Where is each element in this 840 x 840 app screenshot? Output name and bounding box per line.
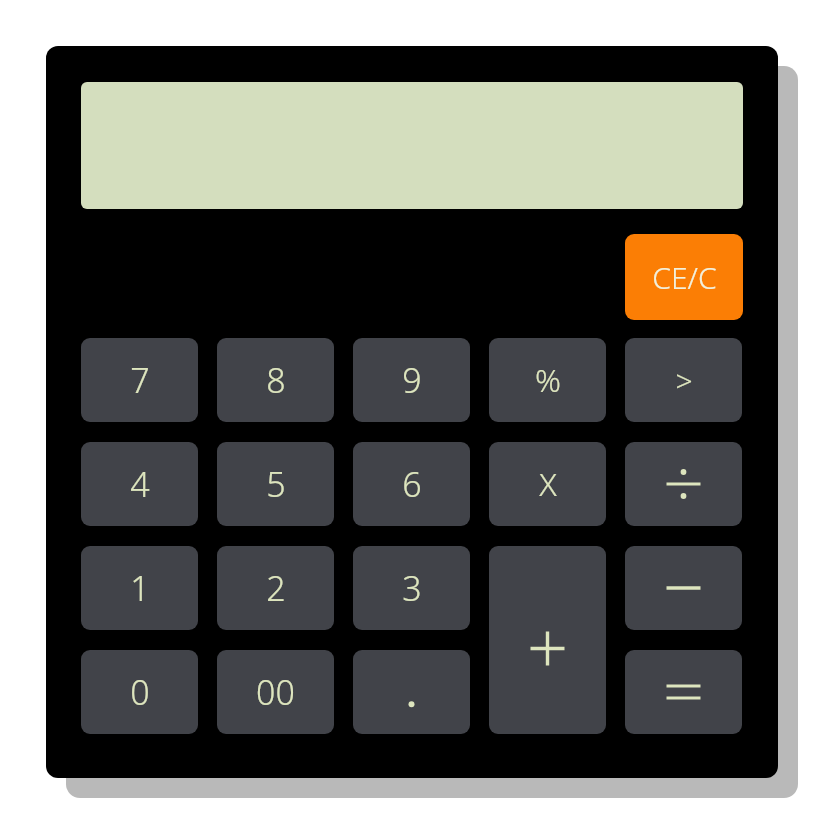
button[interactable]: 5 — [217, 442, 334, 526]
staticText: 5 — [266, 461, 286, 507]
button[interactable]: 1 — [81, 546, 198, 630]
button[interactable]: 7 — [81, 338, 198, 422]
staticText: 2 — [266, 565, 286, 611]
button[interactable]: 8 — [217, 338, 334, 422]
staticText: 3 — [402, 565, 422, 611]
button[interactable]: Equals — [625, 650, 742, 734]
button[interactable]: 4 — [81, 442, 198, 526]
staticText: 7 — [130, 357, 150, 403]
staticText: 1 — [130, 565, 150, 611]
button[interactable]: CE/C — [625, 234, 743, 320]
staticText: 00 — [256, 669, 295, 715]
button[interactable]: Divide — [625, 442, 742, 526]
staticText: % — [535, 358, 561, 402]
staticText: X — [539, 462, 557, 506]
staticText: CE/C — [652, 257, 717, 298]
staticText: 8 — [266, 357, 286, 403]
staticText: 0 — [130, 669, 150, 715]
button[interactable]: 3 — [353, 546, 470, 630]
button[interactable]: 9 — [353, 338, 470, 422]
button[interactable]: Minus — [625, 546, 742, 630]
button[interactable]: 6 — [353, 442, 470, 526]
staticText: > — [675, 360, 693, 401]
button[interactable]: Decimal point — [353, 650, 470, 734]
staticText: 4 — [130, 461, 150, 507]
button[interactable] — [81, 82, 743, 209]
button[interactable]: % — [489, 338, 606, 422]
button[interactable]: 00 — [217, 650, 334, 734]
button[interactable]: 2 — [217, 546, 334, 630]
button[interactable]: 0 — [81, 650, 198, 734]
button[interactable]: Plus — [489, 546, 606, 734]
button[interactable]: > — [625, 338, 742, 422]
button[interactable]: X — [489, 442, 606, 526]
staticText: 9 — [402, 357, 422, 403]
staticText: 6 — [402, 461, 422, 507]
